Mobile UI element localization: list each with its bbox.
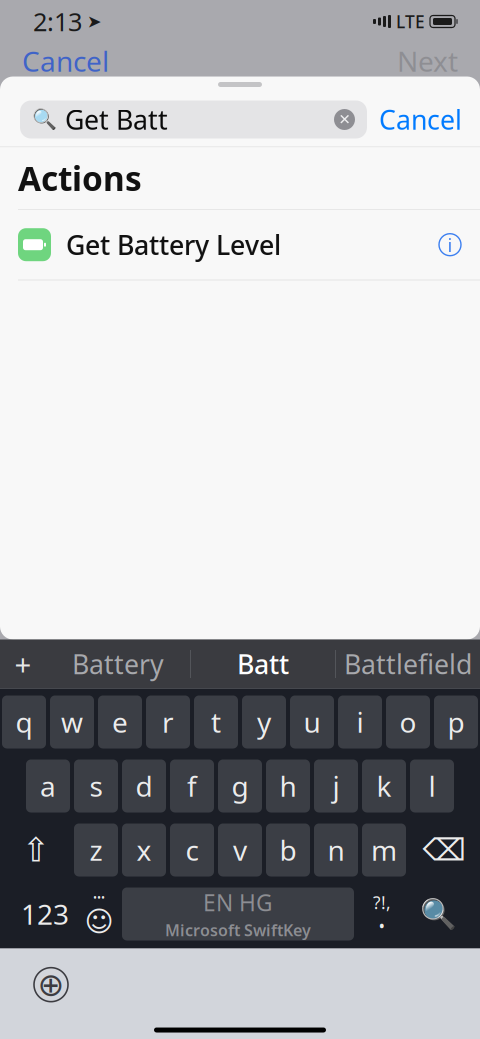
staticText: t bbox=[211, 703, 221, 741]
staticText: Cancel bbox=[379, 102, 462, 137]
staticText: h bbox=[279, 767, 296, 805]
button[interactable]: w bbox=[50, 695, 94, 748]
button[interactable]: Punctuation bbox=[354, 887, 410, 940]
staticText: l bbox=[428, 767, 435, 805]
button[interactable]: Get Battery Level bbox=[0, 210, 480, 280]
staticText: 2:13 bbox=[33, 5, 82, 38]
button[interactable]: p bbox=[434, 695, 478, 748]
button[interactable]: Add bbox=[0, 644, 46, 683]
button[interactable]: Emoji bbox=[76, 887, 122, 940]
staticText: s bbox=[89, 767, 102, 805]
staticText: d bbox=[135, 767, 152, 805]
button[interactable]: o bbox=[386, 695, 430, 748]
staticText: EN HG bbox=[203, 887, 273, 917]
staticText: ⇧ bbox=[22, 831, 50, 869]
button[interactable]: t bbox=[194, 695, 238, 748]
staticText: ?!, bbox=[373, 891, 391, 914]
staticText: ➤ bbox=[87, 12, 102, 31]
staticText: ✕ bbox=[338, 111, 350, 128]
staticText: i bbox=[356, 703, 363, 741]
staticText: q bbox=[15, 703, 32, 741]
button[interactable]: s bbox=[74, 759, 118, 812]
staticText: g bbox=[231, 767, 248, 805]
button[interactable]: Cancel bbox=[379, 102, 462, 137]
staticText: Next bbox=[397, 42, 458, 80]
button[interactable]: e bbox=[98, 695, 142, 748]
staticText: ⊕ bbox=[37, 966, 64, 1003]
button[interactable]: f bbox=[170, 759, 214, 812]
staticText: e bbox=[112, 703, 128, 741]
staticText: f bbox=[187, 767, 197, 805]
button[interactable]: u bbox=[290, 695, 334, 748]
staticText: z bbox=[89, 831, 102, 869]
button[interactable]: i bbox=[338, 695, 382, 748]
staticText: m bbox=[371, 831, 397, 869]
staticText: + bbox=[14, 644, 31, 683]
staticText: 123 bbox=[21, 895, 69, 933]
staticText: i bbox=[447, 232, 452, 257]
staticText: v bbox=[233, 831, 247, 869]
staticText: Get Battery Level bbox=[66, 227, 281, 262]
button[interactable]: a bbox=[26, 759, 70, 812]
staticText: u bbox=[303, 703, 320, 741]
staticText: p bbox=[447, 703, 464, 741]
button[interactable]: Space bbox=[122, 887, 354, 940]
staticText: • bbox=[378, 914, 385, 937]
staticText: r bbox=[162, 703, 174, 741]
button[interactable]: v bbox=[218, 823, 262, 876]
staticText: 🔍 bbox=[419, 897, 456, 931]
button[interactable]: x bbox=[122, 823, 166, 876]
button[interactable]: Batt bbox=[191, 646, 335, 682]
staticText: c bbox=[185, 831, 198, 869]
button[interactable]: 123 bbox=[14, 887, 76, 940]
staticText: 🔍 bbox=[32, 108, 57, 131]
staticText: Microsoft SwiftKey bbox=[165, 919, 311, 941]
staticText: w bbox=[61, 703, 83, 741]
staticText: LTE bbox=[396, 10, 425, 33]
button[interactable]: Search bbox=[410, 887, 466, 940]
button[interactable]: Shift bbox=[14, 823, 58, 876]
staticText: Get Batt bbox=[65, 102, 168, 137]
button[interactable]: n bbox=[314, 823, 358, 876]
button[interactable]: k bbox=[362, 759, 406, 812]
staticText: a bbox=[40, 767, 56, 805]
staticText: k bbox=[376, 767, 391, 805]
button[interactable]: q bbox=[2, 695, 46, 748]
staticText: Cancel bbox=[22, 42, 109, 80]
staticText: b bbox=[279, 831, 296, 869]
button[interactable]: Battlefield bbox=[336, 646, 480, 682]
staticText: n bbox=[327, 831, 344, 869]
staticText: Batt bbox=[237, 646, 289, 682]
staticText: ⌫ bbox=[422, 833, 465, 867]
button[interactable]: b bbox=[266, 823, 310, 876]
button[interactable]: g bbox=[218, 759, 262, 812]
button[interactable]: Globe bbox=[34, 966, 68, 1003]
button[interactable]: c bbox=[170, 823, 214, 876]
button[interactable]: r bbox=[146, 695, 190, 748]
staticText: ••• bbox=[93, 890, 105, 905]
staticText: Battlefield bbox=[344, 646, 472, 682]
button[interactable]: Clear text bbox=[334, 109, 355, 130]
button[interactable]: y bbox=[242, 695, 286, 748]
staticText: Actions bbox=[18, 156, 142, 200]
staticText: Battery bbox=[72, 646, 164, 682]
button[interactable]: m bbox=[362, 823, 406, 876]
button[interactable]: l bbox=[410, 759, 454, 812]
button[interactable]: Delete bbox=[422, 823, 466, 876]
staticText: ☺ bbox=[84, 906, 113, 937]
staticText: j bbox=[332, 767, 339, 805]
button[interactable]: z bbox=[74, 823, 118, 876]
button[interactable]: d bbox=[122, 759, 166, 812]
button[interactable]: j bbox=[314, 759, 358, 812]
staticText: o bbox=[399, 703, 416, 741]
button[interactable]: Battery bbox=[46, 646, 190, 682]
staticText: y bbox=[257, 703, 271, 741]
button[interactable]: h bbox=[266, 759, 310, 812]
staticText: x bbox=[136, 831, 151, 869]
